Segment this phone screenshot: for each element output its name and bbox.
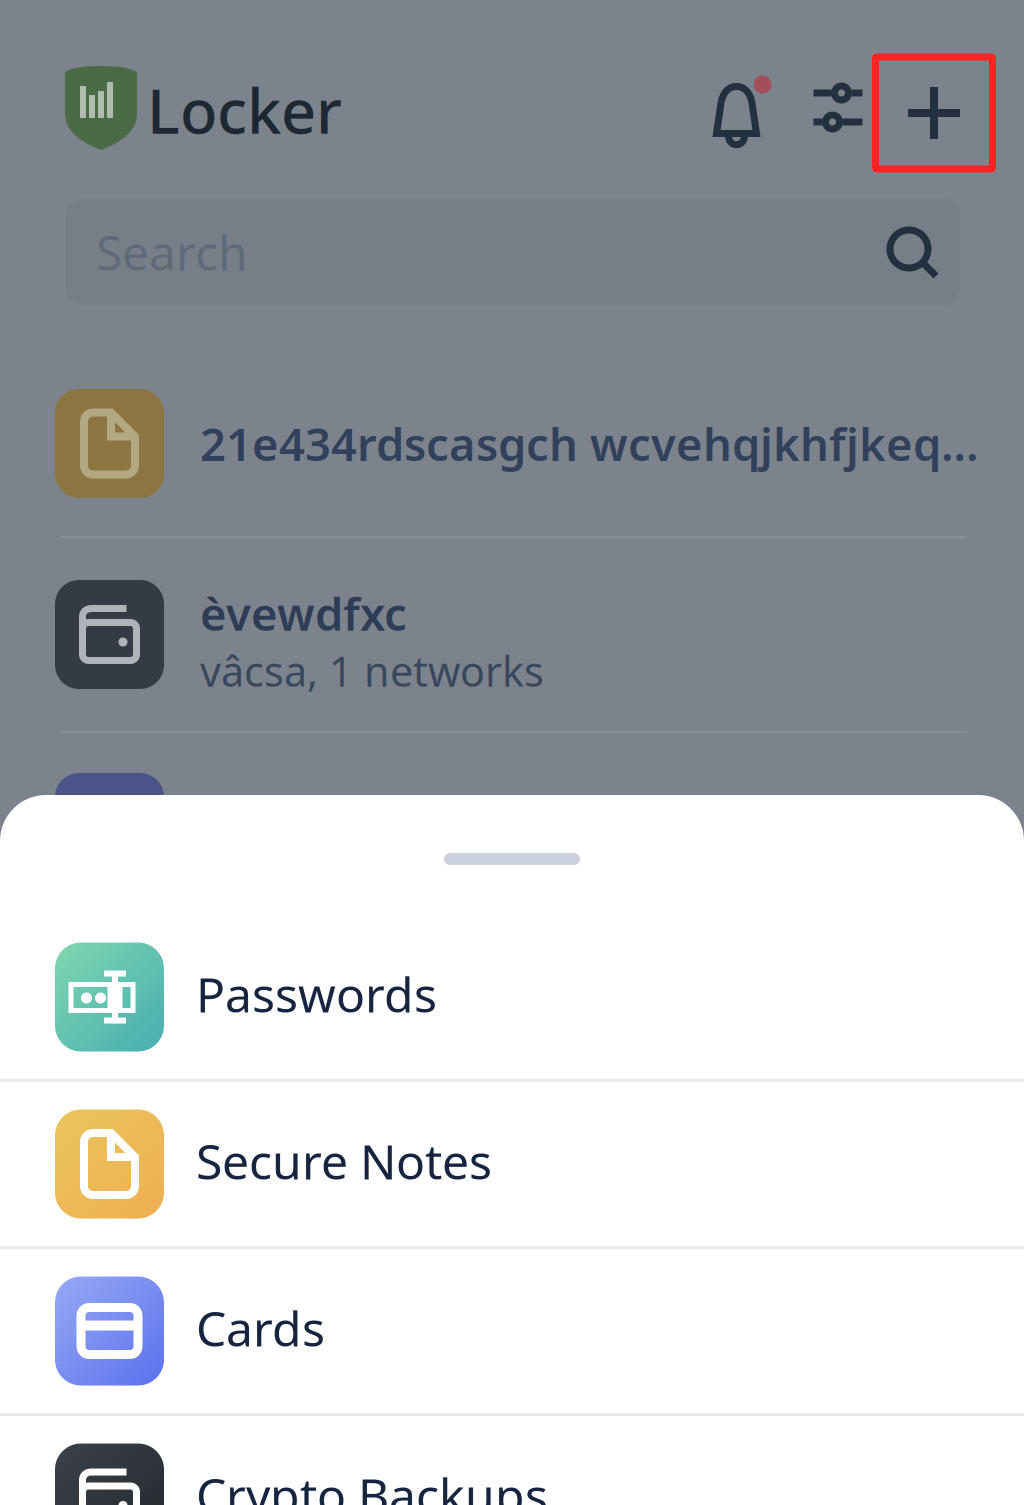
- button[interactable]: Search: [0, 199, 1024, 305]
- staticText: Cards: [196, 1296, 325, 1360]
- staticText: èvewdfxc: [200, 583, 407, 643]
- button[interactable]: 21e434rdscasgch wcvehqjkhfjkeq…: [0, 351, 1024, 536]
- button[interactable]: èvewdfxc: [0, 538, 1024, 731]
- button[interactable]: Passwords: [0, 915, 1024, 1079]
- button[interactable]: Crypto Backups: [0, 1416, 1024, 1505]
- button[interactable]: Cards: [0, 1249, 1024, 1413]
- staticText: 21e434rdscasgch wcvehqjkhfjkeq…: [200, 413, 979, 474]
- staticText: Crypto Backups: [196, 1463, 548, 1505]
- button[interactable]: Secure Notes: [0, 1082, 1024, 1246]
- staticText: Search: [96, 220, 248, 284]
- staticText: vâcsa, 1 networks: [200, 643, 544, 698]
- staticText: Locker: [147, 69, 342, 151]
- staticText: Passwords: [196, 962, 437, 1026]
- button[interactable]: Filters: [800, 65, 876, 151]
- staticText: Secure Notes: [196, 1129, 492, 1193]
- button[interactable]: Add item: [875, 57, 992, 169]
- button[interactable]: Notifications: [704, 65, 780, 151]
